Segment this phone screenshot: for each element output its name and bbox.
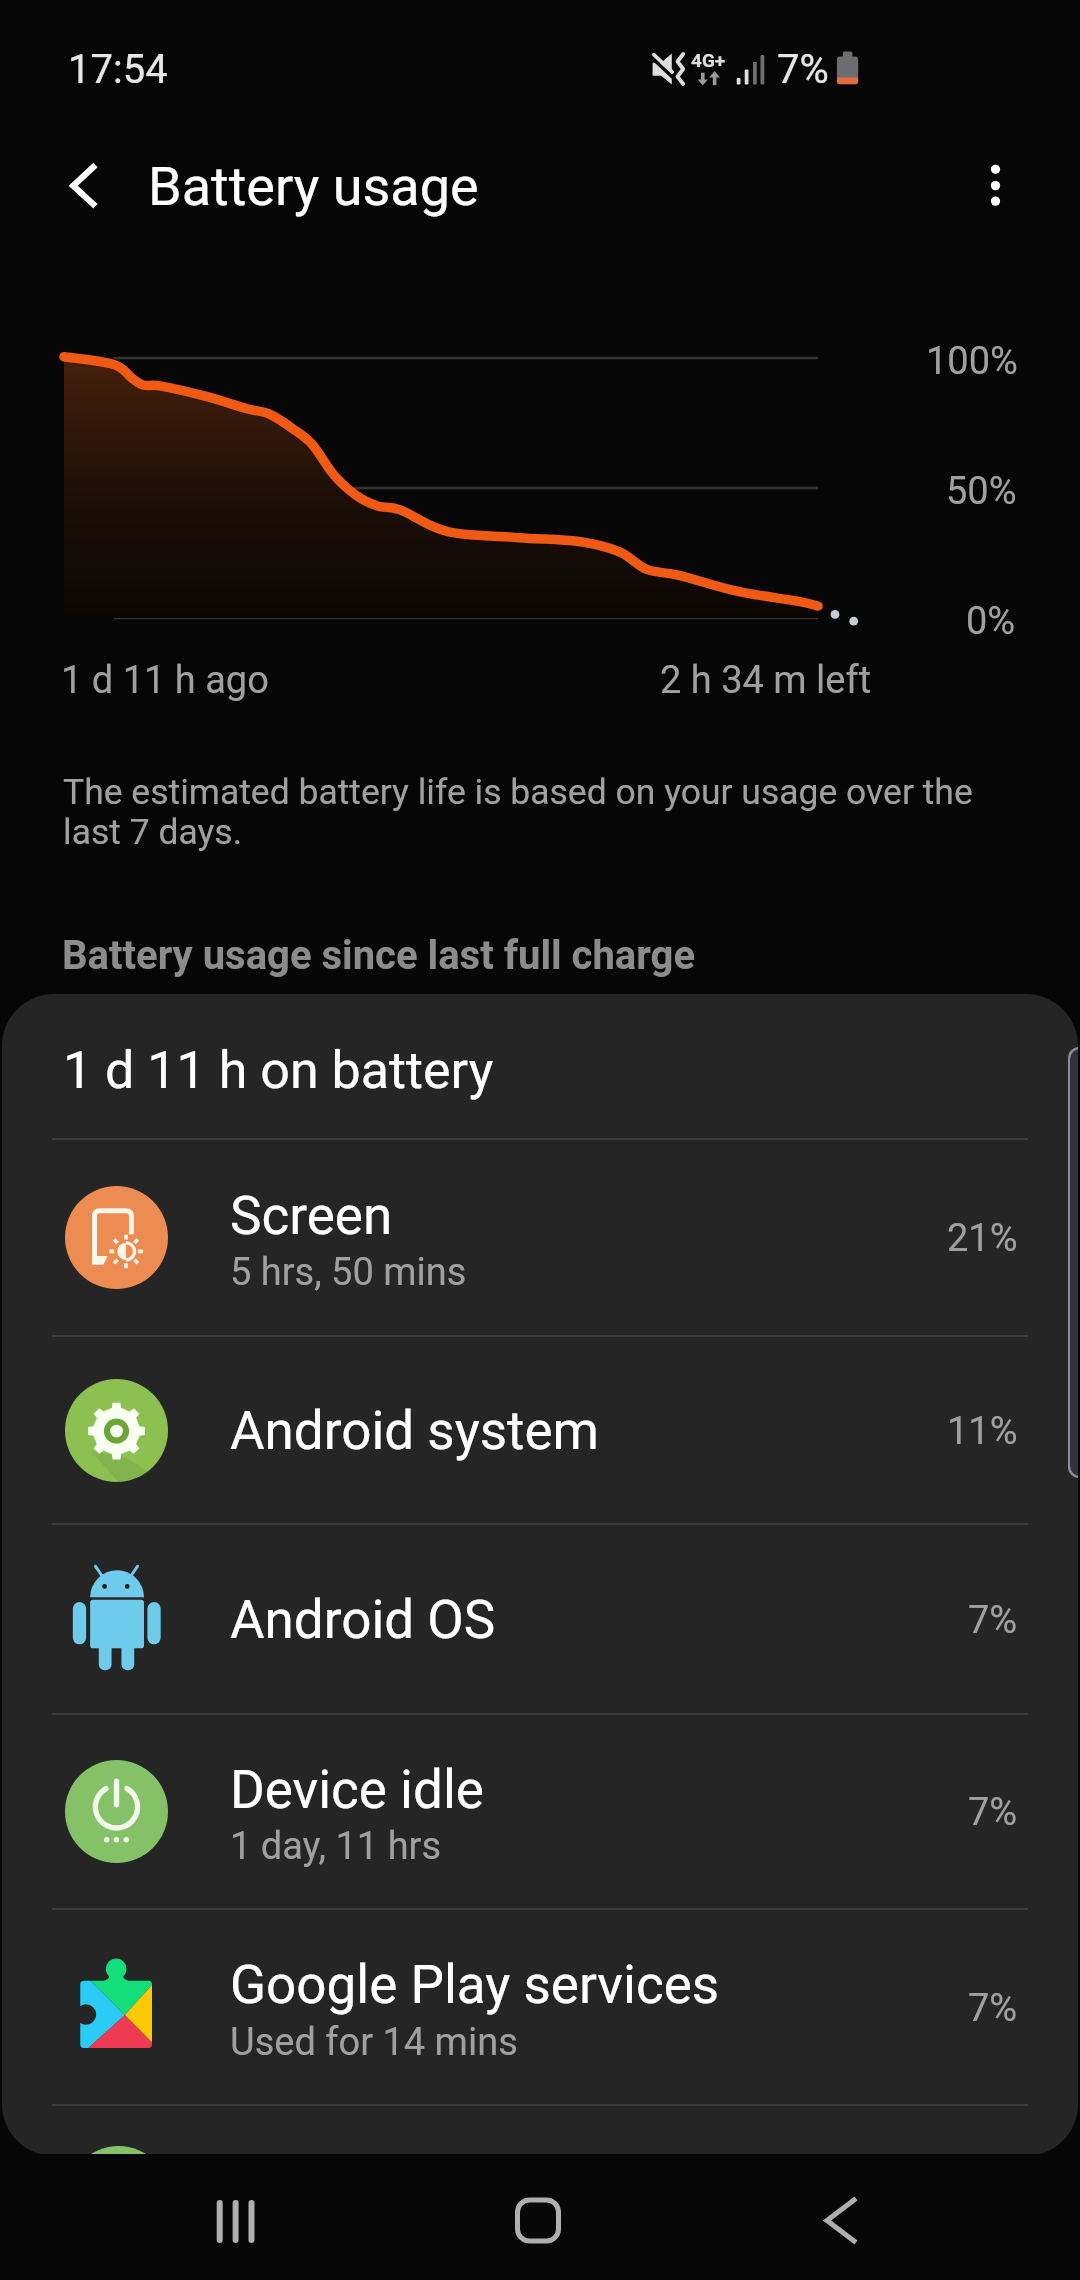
button[interactable]: Device idle	[2, 1715, 1078, 1908]
staticText: Google Play services	[230, 1954, 720, 2016]
button[interactable]: More options	[950, 142, 1042, 234]
staticText: 11%	[947, 1409, 1018, 1454]
staticText: 50%	[946, 469, 1017, 514]
staticText: 4G+	[691, 49, 726, 71]
staticText: 1 day, 11 hrs	[230, 1824, 442, 1869]
button[interactable]: Home	[452, 2154, 624, 2280]
staticText: Android OS	[230, 1589, 496, 1651]
staticText: 1 d 11 h ago	[61, 658, 269, 703]
button[interactable]: Android OS	[2, 1525, 1078, 1713]
staticText: 100%	[926, 339, 1018, 384]
staticText: Used for 14 mins	[230, 2020, 518, 2065]
button[interactable]: Recents	[150, 2154, 322, 2280]
staticText: 21%	[947, 1216, 1018, 1261]
staticText: 7%	[968, 1598, 1018, 1643]
button[interactable]: Back	[36, 142, 130, 236]
staticText: 5 hrs, 50 mins	[230, 1250, 467, 1295]
staticText: The estimated battery life is based on y…	[63, 771, 981, 853]
button[interactable]: Google Play services	[2, 1910, 1078, 2104]
staticText: 17:54	[68, 46, 168, 93]
staticText: Battery usage	[148, 155, 479, 218]
button[interactable]: Screen	[2, 1140, 1078, 1335]
staticText: Screen	[230, 1185, 393, 1247]
staticText: Android system	[230, 1400, 600, 1462]
staticText: 7%	[777, 46, 829, 93]
staticText: 2 h 34 m left	[660, 658, 872, 703]
staticText: 7%	[968, 1986, 1018, 2031]
staticText: Battery usage since last full charge	[62, 932, 696, 979]
button[interactable]: Back	[754, 2154, 926, 2280]
staticText: 7%	[968, 1790, 1018, 1835]
staticText: 1 d 11 h on battery	[63, 1040, 494, 1101]
staticText: 0%	[966, 599, 1016, 644]
button[interactable]: Android system	[2, 1337, 1078, 1523]
staticText: Device idle	[230, 1759, 484, 1821]
